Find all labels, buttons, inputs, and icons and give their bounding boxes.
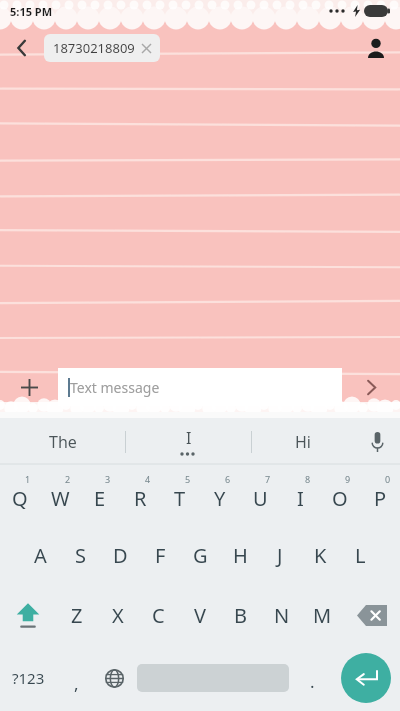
staticText: I (297, 485, 304, 512)
button[interactable]: Send (342, 364, 400, 410)
button[interactable]: Add attachment (0, 364, 58, 410)
staticText: 2 (65, 473, 71, 485)
staticText: M (313, 602, 332, 629)
button[interactable]: Hi (252, 418, 354, 465)
staticText: 4 (145, 473, 151, 485)
button[interactable]: G (180, 525, 220, 585)
staticText: Q (12, 485, 28, 512)
button[interactable]: K (300, 525, 340, 585)
button[interactable]: Shift (0, 585, 56, 645)
button[interactable]: L (340, 525, 380, 585)
button[interactable]: F (140, 525, 180, 585)
button[interactable]: Voice input (354, 418, 400, 465)
button[interactable]: Change language (95, 645, 133, 711)
button[interactable]: , (57, 645, 95, 711)
staticText: 8 (305, 473, 311, 485)
staticText: Z (71, 602, 83, 629)
staticText: W (51, 485, 70, 512)
staticText: L (355, 542, 366, 569)
staticText: E (94, 485, 106, 512)
button[interactable]: H (220, 525, 260, 585)
button[interactable]: V (179, 585, 220, 645)
staticText: 9 (345, 473, 351, 485)
staticText: Hi (295, 431, 311, 453)
button[interactable]: Enter (331, 645, 400, 711)
staticText: K (314, 542, 327, 569)
staticText: V (194, 602, 206, 629)
button[interactable]: 3 (80, 465, 120, 525)
staticText: 3 (105, 473, 111, 485)
staticText: U (253, 485, 268, 512)
button[interactable]: 4 (120, 465, 160, 525)
button[interactable]: X (97, 585, 138, 645)
staticText: Text message (70, 378, 160, 397)
staticText: 1 (25, 473, 31, 485)
staticText: . (310, 670, 315, 693)
button[interactable]: Contact (352, 26, 400, 70)
staticText: C (152, 602, 165, 629)
staticText: J (277, 542, 283, 569)
staticText: 5:15 PM (10, 4, 53, 19)
button[interactable]: 0 (360, 465, 400, 525)
button[interactable]: ?123 (0, 645, 57, 711)
button[interactable]: 9 (320, 465, 360, 525)
staticText: 5 (185, 473, 191, 485)
button[interactable]: 7 (240, 465, 280, 525)
button[interactable]: Z (56, 585, 97, 645)
staticText: T (174, 485, 186, 512)
button[interactable]: Backspace (343, 585, 400, 645)
button[interactable]: 5 (160, 465, 200, 525)
button[interactable]: 18730218809 (44, 34, 160, 62)
staticText: 18730218809 (53, 39, 135, 57)
button[interactable]: M (302, 585, 343, 645)
staticText: G (193, 542, 208, 569)
button[interactable]: A (20, 525, 60, 585)
staticText: H (233, 542, 248, 569)
button[interactable]: C (138, 585, 179, 645)
button[interactable]: 6 (200, 465, 240, 525)
button[interactable]: S (60, 525, 100, 585)
staticText: F (155, 542, 166, 569)
staticText: D (113, 542, 128, 569)
button[interactable]: 2 (40, 465, 80, 525)
button[interactable]: N (261, 585, 302, 645)
button[interactable]: Text message (58, 368, 342, 406)
staticText: A (34, 542, 47, 569)
staticText: ?123 (12, 668, 45, 688)
staticText: The (49, 431, 77, 453)
staticText: B (234, 602, 247, 629)
button[interactable]: 8 (280, 465, 320, 525)
staticText: P (374, 485, 387, 512)
staticText: 7 (265, 473, 271, 485)
button[interactable]: The (0, 418, 125, 465)
staticText: R (134, 485, 147, 512)
button[interactable]: B (220, 585, 261, 645)
staticText: S (75, 542, 86, 569)
button[interactable]: J (260, 525, 300, 585)
button[interactable]: 1 (0, 465, 40, 525)
button[interactable]: . (293, 645, 331, 711)
staticText: X (112, 602, 124, 629)
button[interactable]: I (126, 427, 251, 449)
staticText: N (274, 602, 290, 629)
button[interactable]: D (100, 525, 140, 585)
staticText: O (332, 485, 348, 512)
staticText: 6 (225, 473, 231, 485)
staticText: Y (214, 485, 226, 512)
staticText: , (74, 672, 79, 695)
staticText: 0 (385, 473, 391, 485)
button[interactable]: Back (0, 26, 44, 70)
staticText: I (186, 427, 192, 449)
